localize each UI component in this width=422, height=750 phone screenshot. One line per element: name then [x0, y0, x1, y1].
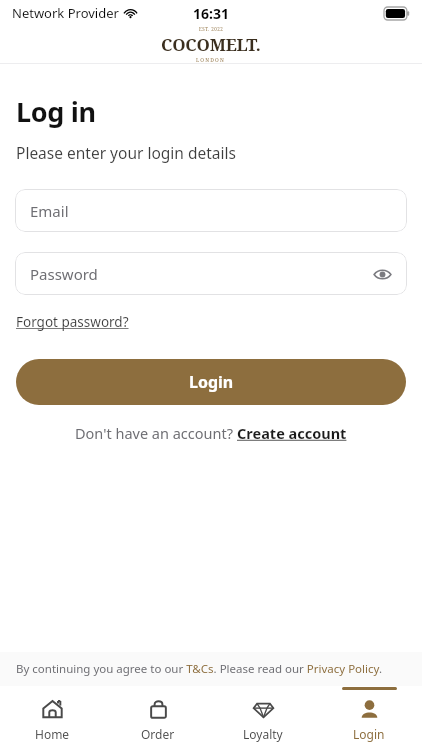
staticText: Forgot password? [16, 313, 129, 331]
staticText: Don't have an account? [75, 423, 237, 443]
staticText: EST. 2022 [199, 26, 224, 32]
button[interactable]: Forgot password? [16, 313, 129, 331]
staticText: Order [141, 726, 175, 742]
staticText: Home [35, 726, 70, 742]
staticText: Please enter your login details [16, 142, 236, 163]
staticText: Create account [237, 423, 347, 443]
button[interactable]: By continuing you agree to our T&Cs. Ple… [16, 661, 383, 677]
staticText: Loyalty [243, 726, 283, 742]
button[interactable]: Login [316, 686, 422, 750]
staticText: Login [189, 371, 234, 393]
staticText: COCOMELT. [161, 33, 261, 56]
staticText: Email [30, 201, 69, 221]
button[interactable]: Home [0, 686, 105, 750]
staticText: Password [30, 264, 98, 284]
staticText: 16:31 [193, 4, 229, 23]
button[interactable]: Email [15, 189, 407, 232]
staticText: LONDON [196, 57, 226, 63]
staticText: Log in [16, 93, 96, 130]
button[interactable]: Order [105, 686, 210, 750]
staticText: Login [353, 726, 385, 742]
button[interactable]: Loyalty [210, 686, 316, 750]
button[interactable]: Show password [371, 263, 393, 285]
staticText: By continuing you agree to our T&Cs. Ple… [16, 661, 383, 677]
button[interactable]: Create account [237, 423, 347, 443]
button[interactable]: Password [15, 252, 407, 295]
staticText: Network Provider [12, 4, 119, 22]
button[interactable]: Login [16, 359, 406, 405]
